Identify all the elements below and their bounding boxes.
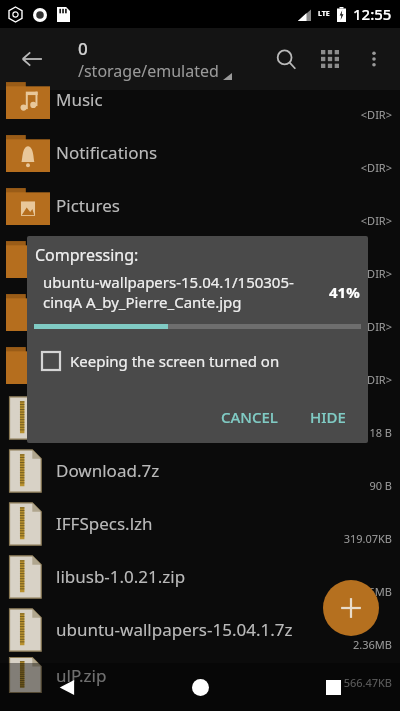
staticText: <DIR>	[360, 266, 392, 281]
button[interactable]: More options	[352, 37, 396, 81]
staticText: CANCEL	[221, 407, 278, 427]
staticText: IFFSpecs.lzh	[56, 512, 153, 535]
staticText: HIDE	[310, 407, 346, 427]
staticText: <DIR>	[360, 107, 392, 122]
staticText: 90 B	[369, 478, 392, 493]
button[interactable]: ubuntu-wallpapers-15.04.1.7z	[0, 603, 400, 656]
button[interactable]: libusb-1.0.21.zip	[0, 550, 400, 603]
staticText: 2.36MB	[353, 637, 392, 652]
staticText: ulP.zip	[56, 664, 107, 687]
button[interactable]: Add	[323, 580, 379, 636]
button[interactable]: Back	[10, 37, 54, 81]
staticText: Download.7z	[56, 459, 160, 482]
staticText: LTE	[318, 9, 330, 19]
staticText: ubuntu-wallpapers-15.04.1.7z	[56, 618, 293, 641]
staticText: 18 B	[369, 425, 392, 440]
button[interactable]: bkp.zip	[0, 391, 400, 444]
button[interactable]: Ringtones	[0, 285, 400, 338]
staticText: Notifications	[56, 141, 158, 164]
staticText: Pictures	[56, 194, 120, 217]
button[interactable]: Home	[134, 663, 267, 711]
button[interactable]: Pictures	[0, 179, 400, 232]
staticText: Music	[56, 88, 103, 111]
button[interactable]: Download.7z	[0, 444, 400, 497]
staticText: <DIR>	[360, 213, 392, 228]
button[interactable]: Keeping the screen turned on	[42, 351, 368, 371]
staticText: <DIR>	[360, 372, 392, 387]
staticText: ubuntu-wallpapers-15.04.1/150305-cinqA A…	[43, 272, 323, 312]
staticText: Podcasts	[56, 247, 128, 270]
staticText: 41%	[329, 282, 360, 302]
staticText: libusb-1.0.21.zip	[56, 565, 186, 588]
staticText: /storage/emulated	[78, 60, 219, 82]
staticText: <DIR>	[360, 160, 392, 175]
button[interactable]: Podcasts	[0, 232, 400, 285]
staticText: Android	[56, 353, 120, 376]
button[interactable]: Music	[0, 73, 400, 126]
button[interactable]: Notifications	[0, 126, 400, 179]
button[interactable]: CANCEL	[213, 401, 286, 433]
staticText: 0	[78, 37, 88, 60]
staticText: 566.47KB	[343, 675, 392, 690]
staticText: 12:55	[353, 4, 392, 24]
staticText: <DIR>	[360, 319, 392, 334]
staticText: 319.07KB	[343, 531, 392, 546]
staticText: Keeping the screen turned on	[70, 351, 280, 371]
staticText: Ringtones	[56, 300, 137, 323]
button[interactable]: Back	[0, 663, 133, 711]
button[interactable]: HIDE	[302, 401, 354, 433]
button[interactable]: ulP.zip	[0, 656, 400, 694]
button[interactable]: Search	[264, 37, 308, 81]
staticText: Compressing:	[35, 244, 139, 266]
button[interactable]: IFFSpecs.lzh	[0, 497, 400, 550]
button[interactable]: Recent apps	[267, 663, 400, 711]
staticText: 2.36MB	[353, 584, 392, 599]
button[interactable]: Android	[0, 338, 400, 391]
button[interactable]: Grid view	[308, 37, 352, 81]
